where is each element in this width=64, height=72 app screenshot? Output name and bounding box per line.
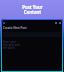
staticText: Post Your Content — [22, 4, 43, 15]
staticText: Share your thoughts with the world — [3, 40, 21, 49]
staticText: Create New Post — [3, 26, 27, 30]
